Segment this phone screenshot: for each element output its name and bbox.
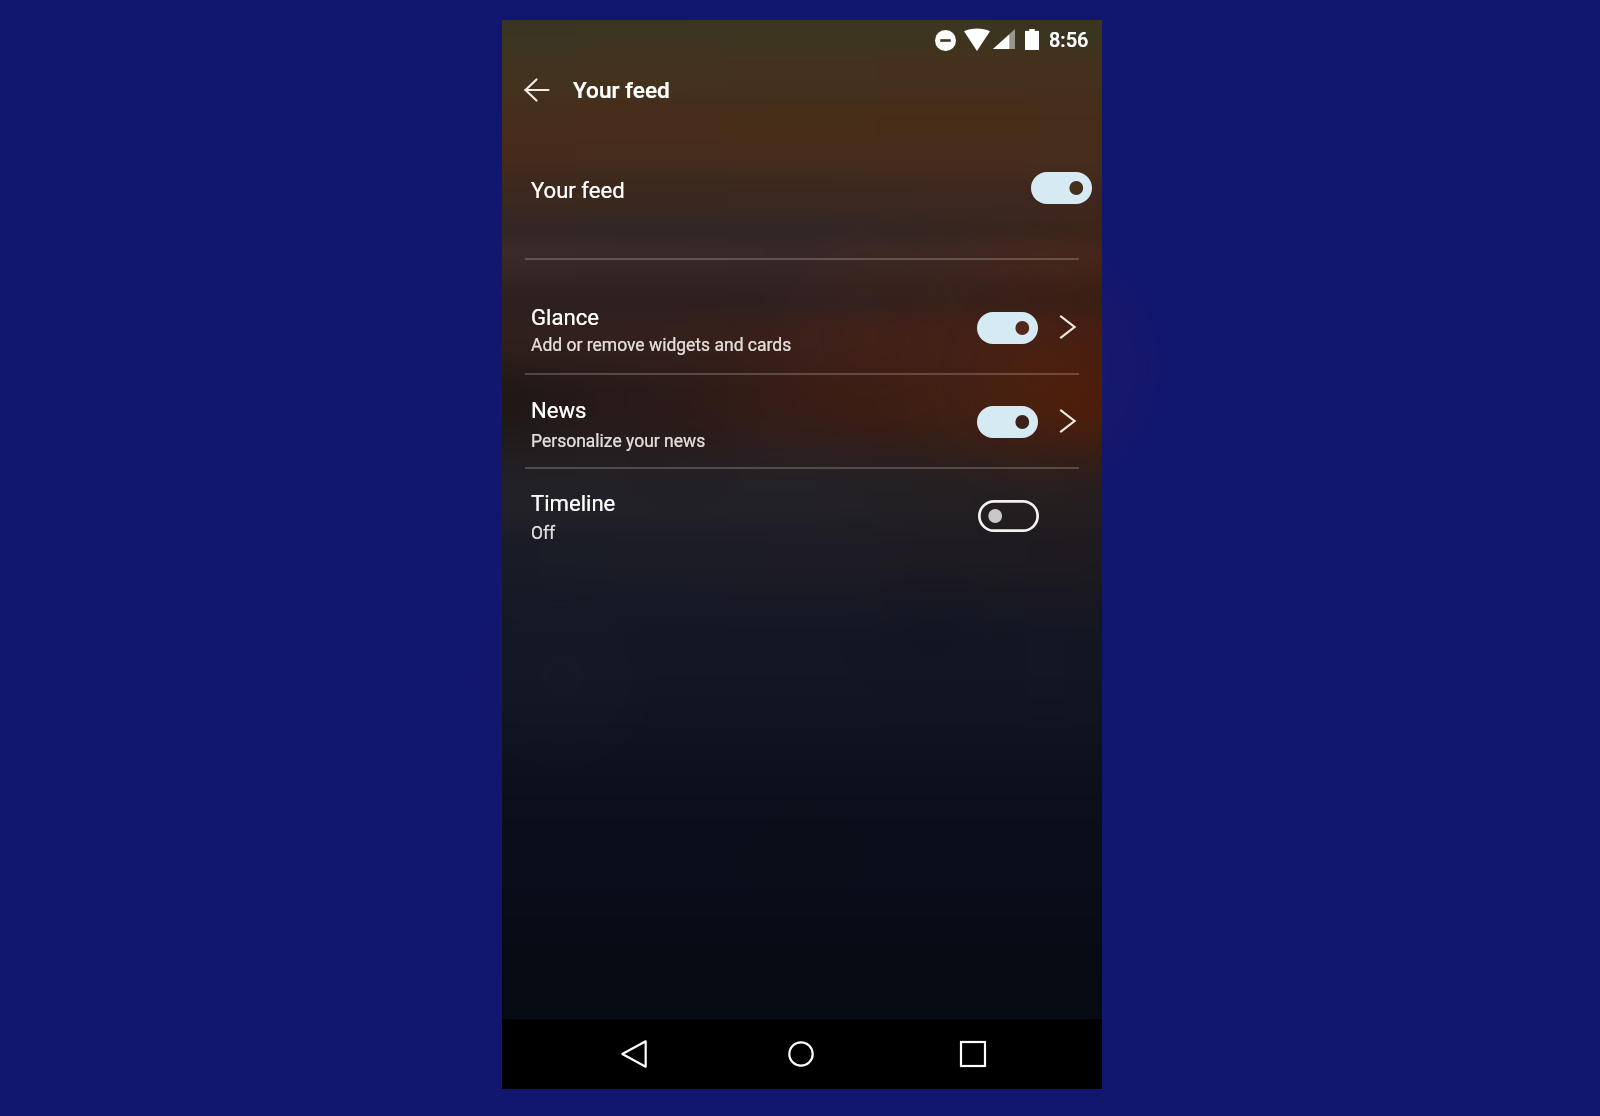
button[interactable]: Glance — [502, 286, 1102, 368]
button[interactable]: News — [502, 380, 1102, 462]
button[interactable]: Timeline — [502, 473, 1102, 555]
staticText: Add or remove widgets and cards — [531, 335, 792, 356]
button[interactable]: Back — [511, 64, 563, 116]
staticText: 8:56 — [1049, 28, 1089, 51]
staticText: Timeline — [531, 490, 616, 516]
button[interactable]: Home — [771, 1024, 831, 1084]
staticText: News — [531, 397, 587, 423]
button[interactable]: Your feed — [502, 156, 1102, 228]
button[interactable]: Toggle, on — [977, 312, 1038, 344]
button[interactable]: Back — [604, 1024, 664, 1084]
button[interactable]: Open settings — [1054, 314, 1080, 340]
button[interactable]: Open settings — [1054, 408, 1080, 434]
button[interactable]: Recents — [943, 1024, 1003, 1084]
staticText: Personalize your news — [531, 431, 706, 452]
staticText: Off — [531, 523, 556, 544]
staticText: Glance — [531, 304, 599, 330]
button[interactable]: Toggle, on — [977, 406, 1038, 438]
button[interactable]: Toggle, on — [1031, 172, 1092, 204]
staticText: Your feed — [573, 77, 670, 103]
button[interactable]: Toggle, off — [978, 500, 1039, 532]
staticText: Your feed — [531, 177, 625, 203]
